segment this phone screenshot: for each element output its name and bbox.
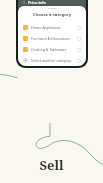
staticText: 2. [23,0,26,5]
staticText: Sell [39,156,64,174]
staticText: Price info [28,0,46,5]
staticText: Choose a category [22,12,82,18]
staticText: Cooking & Tableware [31,47,77,52]
staticText: Home Appliances [31,25,77,30]
button[interactable]: Cooking & Tableware [22,44,82,55]
other: Select Furniture & Decoration [77,37,81,41]
other: Select Home Appliances [77,26,81,30]
staticText: Furniture & Decoration [31,36,77,41]
button[interactable]: Furniture & Decoration [22,33,82,44]
other: Select Select another category [77,59,81,63]
staticText: Select another category [31,58,77,63]
button[interactable]: Home Appliances [22,22,82,33]
button[interactable]: Select another category [22,55,82,66]
other: Select Cooking & Tableware [77,48,81,52]
